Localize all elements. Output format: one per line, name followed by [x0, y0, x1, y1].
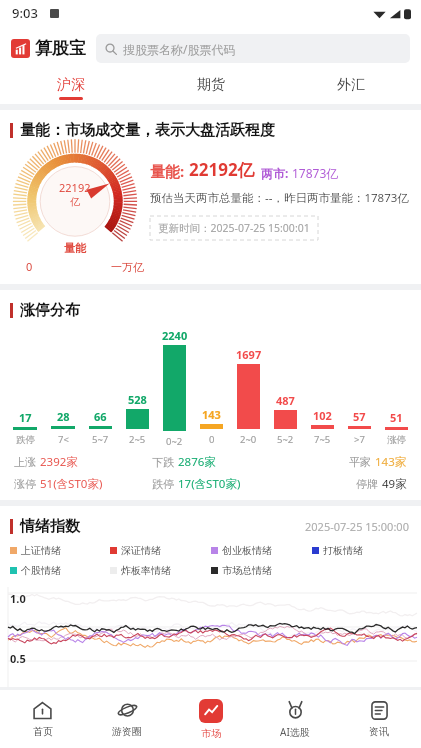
- other: 资讯: [369, 700, 390, 721]
- staticText: 平家: [349, 455, 371, 469]
- staticText: 情绪指数: [20, 517, 80, 536]
- staticText: 22192亿: [189, 158, 255, 181]
- staticText: 首页: [33, 725, 53, 738]
- staticText: 两市:: [261, 165, 292, 181]
- staticText: 66: [94, 409, 107, 424]
- staticText: 0: [209, 433, 215, 446]
- staticText: 51(含ST0家): [40, 476, 103, 492]
- staticText: 预估当天两市总量能：--，昨日两市量能：17873亿: [150, 190, 409, 206]
- staticText: 涨停分布: [20, 301, 80, 320]
- staticText: 2~0: [240, 433, 257, 446]
- other: 游资圈: [117, 700, 138, 721]
- staticText: 22192: [59, 180, 91, 195]
- staticText: 量能：市场成交量，表示大盘活跃程度: [20, 121, 275, 140]
- button[interactable]: 首页: [0, 690, 85, 748]
- staticText: 炸板率情绪: [121, 564, 171, 577]
- staticText: 9:03: [12, 4, 38, 22]
- button[interactable]: 搜股票名称/股票代码: [96, 34, 410, 63]
- staticText: 2240: [162, 328, 188, 343]
- staticText: 49家: [382, 476, 407, 492]
- button[interactable]: 游资圈: [85, 690, 169, 748]
- staticText: 7~5: [314, 433, 331, 446]
- staticText: 28: [57, 409, 70, 424]
- staticText: 创业板情绪: [222, 544, 272, 557]
- button[interactable]: 资讯: [337, 690, 421, 748]
- staticText: 更新时间：2025-07-25 15:00:01: [158, 221, 310, 235]
- staticText: 算股宝: [35, 38, 86, 59]
- button[interactable]: 期货: [141, 71, 281, 104]
- staticText: 17: [19, 410, 32, 425]
- other: 市场: [199, 699, 223, 723]
- other: AI选股: [285, 700, 306, 721]
- staticText: 停牌: [356, 477, 378, 491]
- staticText: 量能: [64, 241, 86, 255]
- staticText: 7<: [58, 433, 69, 446]
- staticText: 跌停: [152, 477, 174, 491]
- staticText: 57: [353, 409, 366, 424]
- staticText: 量能:: [150, 161, 189, 181]
- staticText: 102: [313, 408, 332, 423]
- staticText: 528: [128, 392, 147, 407]
- staticText: 下跌: [152, 455, 174, 469]
- staticText: 游资圈: [112, 725, 142, 738]
- staticText: 17(含ST0家): [178, 476, 241, 492]
- staticText: 0.5: [10, 651, 26, 666]
- staticText: 亿: [70, 195, 80, 208]
- button[interactable]: 外汇: [281, 71, 421, 104]
- staticText: 143家: [375, 454, 407, 470]
- staticText: 搜股票名称/股票代码: [123, 41, 236, 57]
- staticText: 2876家: [178, 454, 216, 470]
- button[interactable]: 市场: [169, 690, 253, 748]
- staticText: 5~2: [277, 433, 294, 446]
- staticText: 0: [26, 259, 33, 274]
- staticText: 个股情绪: [21, 564, 61, 577]
- staticText: 上涨: [14, 455, 36, 469]
- button[interactable]: 沪深: [0, 71, 141, 104]
- staticText: 市场总情绪: [222, 564, 272, 577]
- staticText: 沪深: [57, 76, 85, 94]
- staticText: 涨停: [14, 477, 36, 491]
- other: 首页: [32, 700, 53, 721]
- staticText: 涨停: [387, 434, 406, 446]
- staticText: 2392家: [40, 454, 78, 470]
- staticText: 1697: [236, 347, 262, 362]
- staticText: 深证情绪: [121, 544, 161, 557]
- button[interactable]: AI选股: [253, 690, 337, 748]
- staticText: 17873亿: [292, 165, 339, 181]
- staticText: >7: [354, 433, 365, 446]
- staticText: 1.0: [10, 591, 26, 606]
- staticText: 一万亿: [111, 260, 144, 274]
- staticText: 期货: [197, 76, 225, 94]
- staticText: 5~7: [92, 433, 109, 446]
- staticText: 2025-07-25 15:00:00: [305, 519, 409, 534]
- staticText: 143: [202, 407, 221, 422]
- staticText: 跌停: [16, 434, 35, 446]
- staticText: 市场: [201, 727, 221, 740]
- staticText: 2~5: [129, 433, 146, 446]
- staticText: AI选股: [280, 725, 310, 739]
- staticText: 外汇: [337, 76, 365, 94]
- staticText: 资讯: [369, 725, 389, 738]
- staticText: 51: [390, 410, 403, 425]
- staticText: 487: [276, 393, 295, 408]
- staticText: 0~2: [166, 435, 183, 446]
- staticText: 打板情绪: [323, 544, 363, 557]
- staticText: 上证情绪: [21, 544, 61, 557]
